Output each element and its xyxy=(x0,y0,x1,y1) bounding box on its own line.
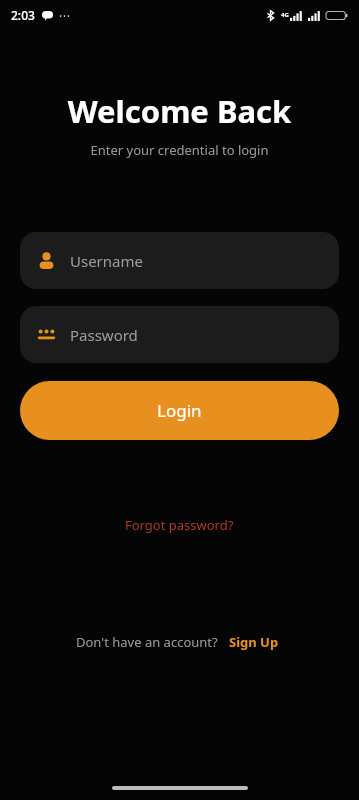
staticText: Forgot password? xyxy=(125,516,234,534)
staticText: Password xyxy=(70,325,138,345)
button[interactable]: Sign Up xyxy=(225,630,283,654)
staticText: Don't have an account? xyxy=(76,633,218,651)
staticText: Username xyxy=(70,251,143,271)
staticText: Sign Up xyxy=(229,633,279,651)
button[interactable]: Login xyxy=(20,381,339,440)
button[interactable]: Password xyxy=(20,306,339,363)
button[interactable]: Username xyxy=(20,232,339,289)
staticText: Enter your credential to login xyxy=(0,141,359,159)
staticText: Login xyxy=(157,399,202,422)
staticText: Welcome Back xyxy=(0,90,359,132)
button[interactable]: Forgot password? xyxy=(117,512,242,538)
staticText: 2:03 xyxy=(11,7,35,23)
staticText: 4G xyxy=(281,11,289,19)
